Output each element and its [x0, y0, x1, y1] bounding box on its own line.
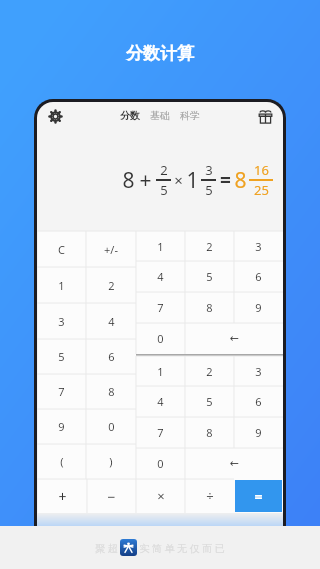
button[interactable]: (: [37, 444, 86, 479]
staticText: 5: [206, 394, 213, 409]
button[interactable]: 0: [136, 448, 185, 479]
button[interactable]: ÷: [185, 479, 234, 513]
staticText: 0: [157, 456, 164, 471]
button[interactable]: −: [87, 479, 136, 513]
staticText: 8: [108, 384, 115, 399]
staticText: =: [220, 167, 231, 193]
staticText: ×: [174, 170, 183, 190]
button[interactable]: 1: [136, 356, 185, 386]
staticText: 9: [255, 300, 262, 315]
button[interactable]: 5: [37, 339, 86, 374]
staticText: 5: [160, 181, 168, 199]
staticText: =: [254, 487, 263, 506]
staticText: 3: [58, 314, 65, 329]
staticText: 6: [255, 394, 262, 409]
button[interactable]: 科学: [175, 106, 205, 125]
staticText: (: [60, 454, 64, 469]
staticText: 1: [157, 239, 164, 254]
button[interactable]: +: [37, 479, 87, 513]
button[interactable]: 4: [136, 261, 185, 292]
button[interactable]: Backspace: [185, 323, 283, 354]
staticText: 8: [206, 425, 213, 440]
staticText: 16: [254, 161, 269, 179]
button[interactable]: 2: [185, 356, 234, 386]
button[interactable]: +/-: [86, 231, 136, 267]
staticText: 4: [157, 269, 164, 284]
staticText: 9: [58, 419, 65, 434]
staticText: 分数计算: [126, 43, 194, 64]
staticText: ×: [157, 487, 165, 505]
button[interactable]: 1: [136, 231, 185, 261]
staticText: 7: [157, 300, 164, 315]
staticText: 2: [206, 239, 213, 254]
button[interactable]: 7: [37, 374, 86, 409]
button[interactable]: 1: [37, 267, 86, 303]
button[interactable]: Settings: [43, 104, 67, 128]
staticText: 8: [122, 166, 135, 195]
staticText: 0: [108, 419, 115, 434]
staticText: 科学: [180, 109, 200, 122]
button[interactable]: 8: [86, 374, 136, 409]
staticText: 25: [254, 181, 269, 199]
button[interactable]: 4: [136, 386, 185, 417]
button[interactable]: =: [235, 480, 282, 512]
staticText: C: [58, 242, 65, 257]
button[interactable]: Backspace: [185, 448, 283, 479]
staticText: 7: [157, 425, 164, 440]
staticText: +: [139, 166, 152, 195]
button[interactable]: 6: [234, 261, 283, 292]
button[interactable]: 6: [86, 339, 136, 374]
button[interactable]: 0: [136, 323, 185, 354]
staticText: ): [109, 454, 113, 469]
button[interactable]: 0: [86, 409, 136, 444]
button[interactable]: 3: [234, 356, 283, 386]
staticText: 4: [157, 394, 164, 409]
button[interactable]: 8: [185, 417, 234, 448]
button[interactable]: 7: [136, 292, 185, 323]
button[interactable]: 6: [234, 386, 283, 417]
staticText: −: [107, 487, 116, 506]
staticText: ÷: [206, 487, 214, 505]
staticText: 实 简 单 无 仅 而 已: [139, 541, 225, 555]
button[interactable]: 7: [136, 417, 185, 448]
staticText: 2: [160, 161, 168, 179]
button[interactable]: 4: [86, 303, 136, 339]
button[interactable]: 9: [37, 409, 86, 444]
staticText: 2: [206, 364, 213, 379]
staticText: 6: [108, 349, 115, 364]
staticText: 5: [205, 181, 213, 199]
staticText: 1: [186, 166, 199, 195]
button[interactable]: 9: [234, 292, 283, 323]
button[interactable]: 9: [234, 417, 283, 448]
staticText: 8: [234, 166, 247, 195]
button[interactable]: 基础: [145, 106, 175, 125]
button[interactable]: 2: [185, 231, 234, 261]
staticText: 9: [255, 425, 262, 440]
staticText: ←: [229, 332, 239, 345]
button[interactable]: 2: [86, 267, 136, 303]
staticText: +/-: [104, 242, 118, 257]
staticText: 8: [206, 300, 213, 315]
button[interactable]: ): [86, 444, 136, 479]
button[interactable]: 5: [185, 386, 234, 417]
staticText: 分数: [120, 109, 140, 122]
button[interactable]: 3: [37, 303, 86, 339]
staticText: 6: [255, 269, 262, 284]
button[interactable]: 3: [234, 231, 283, 261]
staticText: 3: [205, 161, 213, 179]
button[interactable]: ×: [136, 479, 185, 513]
staticText: 5: [58, 349, 65, 364]
staticText: 3: [255, 239, 262, 254]
staticText: 4: [108, 314, 115, 329]
staticText: 聚 超: [95, 541, 118, 555]
button[interactable]: 分数: [115, 106, 145, 125]
button[interactable]: Gift: [253, 104, 277, 128]
button[interactable]: 8: [185, 292, 234, 323]
staticText: 3: [255, 364, 262, 379]
staticText: 基础: [150, 109, 170, 122]
button[interactable]: C: [37, 231, 86, 267]
button[interactable]: 5: [185, 261, 234, 292]
staticText: +: [58, 487, 67, 506]
staticText: 0: [157, 331, 164, 346]
staticText: 1: [58, 278, 65, 293]
